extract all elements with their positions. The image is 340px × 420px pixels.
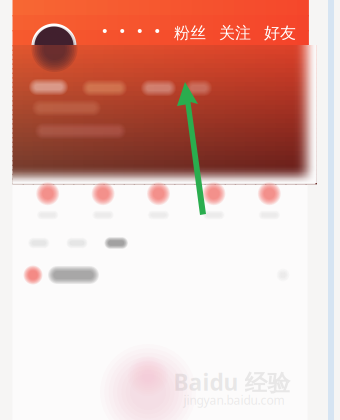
button[interactable]: Tab three xyxy=(104,237,128,249)
button[interactable]: Shortcut xyxy=(75,180,131,222)
staticText: Baidu 经验 xyxy=(173,367,290,397)
button[interactable]: Profile photo xyxy=(33,25,75,67)
button[interactable]: Shortcut xyxy=(20,180,75,222)
button[interactable]: Shortcut xyxy=(186,180,242,222)
button[interactable]: 好友 xyxy=(262,22,298,44)
button[interactable]: List item xyxy=(23,261,298,289)
button[interactable]: Shortcut xyxy=(242,180,297,222)
staticText: 好友 xyxy=(264,23,296,43)
button[interactable]: Tab two xyxy=(66,237,88,249)
button[interactable]: 关注 xyxy=(217,22,253,44)
button[interactable]: 粉丝 xyxy=(172,22,208,44)
staticText: jingyan.baidu.com xyxy=(183,392,284,408)
staticText: 关注 xyxy=(219,23,251,43)
button[interactable]: Shortcut xyxy=(131,180,186,222)
button[interactable]: Tab one xyxy=(28,237,50,249)
staticText: 粉丝 xyxy=(174,23,206,43)
